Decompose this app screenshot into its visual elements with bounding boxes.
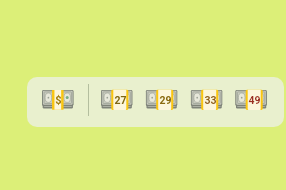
button[interactable]: Banknote 49: [234, 88, 274, 110]
staticText: 27: [114, 94, 127, 106]
staticText: $: [55, 94, 62, 107]
staticText: 33: [204, 94, 217, 106]
button[interactable]: Banknote 29: [145, 88, 185, 110]
button[interactable]: Banknote 27: [100, 88, 140, 110]
button[interactable]: Banknote $: [41, 88, 81, 110]
staticText: 49: [248, 94, 261, 106]
button[interactable]: Banknote 33: [190, 88, 230, 110]
staticText: 29: [159, 94, 172, 106]
